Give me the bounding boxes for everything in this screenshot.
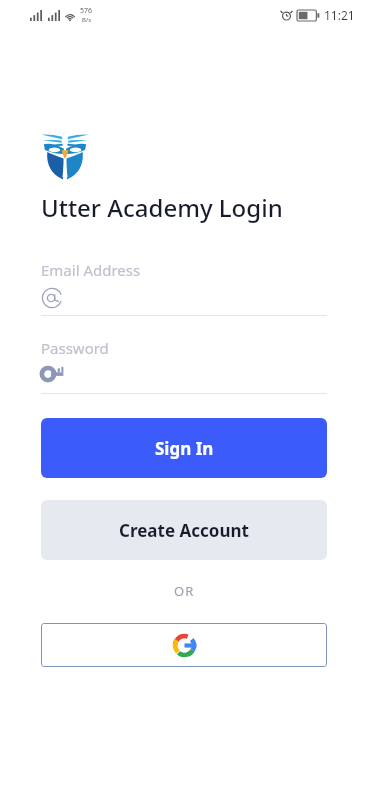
- button[interactable]: Sign In: [41, 418, 327, 478]
- staticText: Create Account: [119, 519, 249, 542]
- staticText: 11:21: [324, 7, 355, 23]
- button[interactable]: Password: [41, 338, 327, 394]
- button[interactable]: Create Account: [41, 500, 327, 560]
- button[interactable]: Sign in with Google: [41, 623, 327, 667]
- staticText: 576: [80, 6, 93, 16]
- button[interactable]: Email Address: [41, 260, 327, 316]
- staticText: B/s: [82, 16, 92, 24]
- staticText: Utter Academy Login: [41, 191, 283, 224]
- staticText: Email Address: [41, 260, 141, 280]
- staticText: OR: [174, 582, 195, 600]
- staticText: Sign In: [155, 437, 214, 460]
- staticText: Password: [41, 338, 109, 358]
